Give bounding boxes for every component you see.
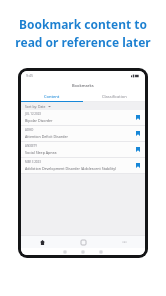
staticText: MAY 3 2023 [25, 160, 41, 164]
button[interactable]: More [104, 236, 145, 248]
staticText: Social Sleep Apnea [25, 150, 57, 155]
button[interactable]: Classification [83, 91, 145, 101]
staticText: ANXIETY [25, 144, 37, 148]
button[interactable]: Content [21, 91, 83, 101]
staticText: ADHD [25, 128, 34, 132]
button[interactable]: Bookmarks [63, 236, 104, 248]
staticText: Attention Deficit Disorder [25, 134, 68, 139]
button[interactable]: Recents [92, 248, 110, 255]
button[interactable]: ADHD [21, 126, 145, 141]
staticText: Classification [102, 94, 127, 99]
staticText: Content [44, 94, 60, 99]
staticText: Bookmarks [72, 83, 94, 88]
button[interactable]: Bookmark [134, 130, 141, 137]
staticText: read or reference later [15, 34, 151, 50]
button[interactable]: Home [21, 236, 63, 248]
button[interactable]: JUL 12 2023 [21, 110, 145, 125]
staticText: Sort by: Date [25, 104, 46, 109]
button[interactable]: ANXIETY [21, 142, 145, 157]
staticText: 9:45 [26, 73, 33, 78]
staticText: Bipolar Disorder [25, 118, 53, 123]
button[interactable]: Sort by: Date [25, 102, 141, 110]
staticText: Addiction Development Disorder (Adolesce… [25, 166, 117, 171]
staticText: JUL 12 2023 [25, 112, 41, 116]
button[interactable]: Bookmark [134, 162, 141, 169]
staticText: Bookmark content to [19, 16, 147, 32]
button[interactable]: Back [56, 248, 74, 255]
button[interactable]: Home [74, 248, 92, 255]
button[interactable]: Bookmark [134, 114, 141, 121]
button[interactable]: Bookmark [134, 146, 141, 153]
button[interactable]: MAY 3 2023 [21, 158, 145, 173]
